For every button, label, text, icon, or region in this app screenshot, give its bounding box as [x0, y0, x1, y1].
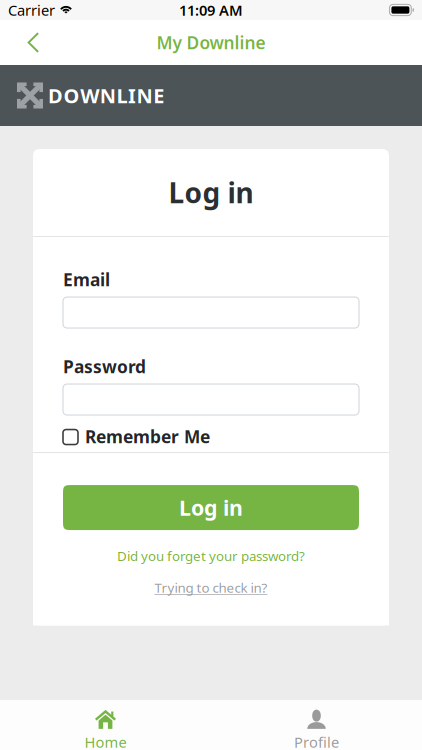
button[interactable]: Trying to check in? — [154, 574, 267, 601]
staticText: DOWNLINE — [48, 82, 164, 109]
staticText: Remember Me — [85, 425, 210, 448]
button[interactable]: Home — [0, 696, 211, 750]
staticText: My Downline — [156, 31, 265, 54]
staticText: Trying to check in? — [154, 579, 267, 596]
button[interactable]: Back — [11, 20, 55, 64]
staticText: 11:09 AM — [179, 0, 243, 20]
button[interactable]: Profile — [211, 696, 422, 750]
staticText: Profile — [294, 732, 339, 750]
staticText: Carrier — [8, 0, 55, 20]
button[interactable]: Log in — [63, 485, 359, 530]
button[interactable]: Did you forget your password? — [117, 542, 305, 570]
staticText: Log in — [168, 174, 253, 211]
staticText: Log in — [179, 493, 243, 522]
button[interactable]: Remember Me — [63, 421, 210, 452]
staticText: Password — [63, 355, 146, 378]
staticText: Email — [63, 268, 110, 291]
staticText: Did you forget your password? — [117, 547, 305, 565]
staticText: Home — [84, 732, 126, 750]
